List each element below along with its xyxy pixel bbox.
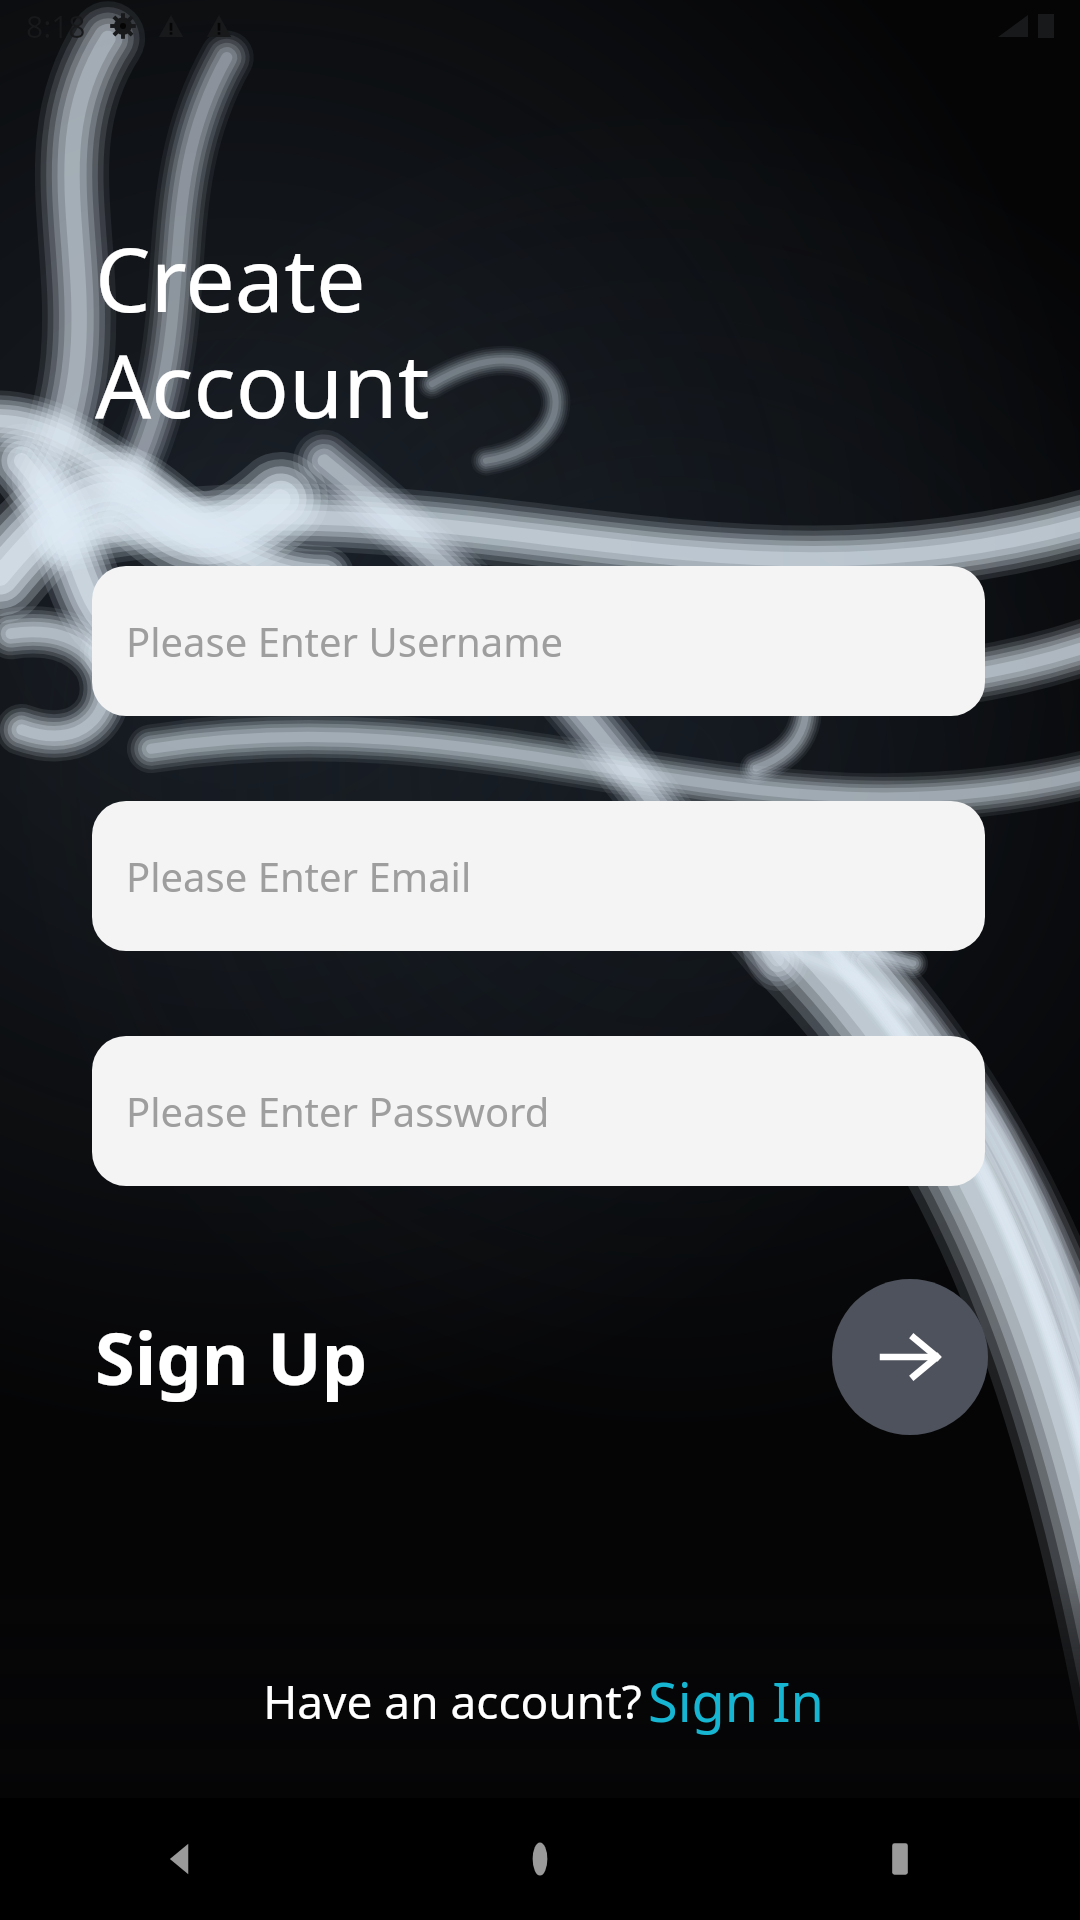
staticText: Sign In	[648, 1664, 824, 1738]
button[interactable]: Recent apps	[720, 1798, 1080, 1920]
staticText: 8:18	[26, 6, 86, 47]
button[interactable]: Home	[360, 1798, 720, 1920]
button[interactable]: Please Enter Username	[92, 566, 985, 716]
button[interactable]: Have an account?	[257, 1664, 824, 1738]
staticText: Please Enter Password	[126, 1084, 550, 1138]
staticText: Create Account	[95, 218, 430, 444]
button[interactable]: Back	[0, 1798, 360, 1920]
staticText: Please Enter Email	[126, 849, 472, 903]
staticText: Please Enter Username	[126, 614, 564, 668]
staticText: Have an account?	[257, 1670, 648, 1733]
button[interactable]: Sign Up	[95, 1308, 368, 1406]
button[interactable]: Please Enter Email	[92, 801, 985, 951]
button[interactable]: Sign Up	[832, 1279, 988, 1435]
button[interactable]: Please Enter Password	[92, 1036, 985, 1186]
